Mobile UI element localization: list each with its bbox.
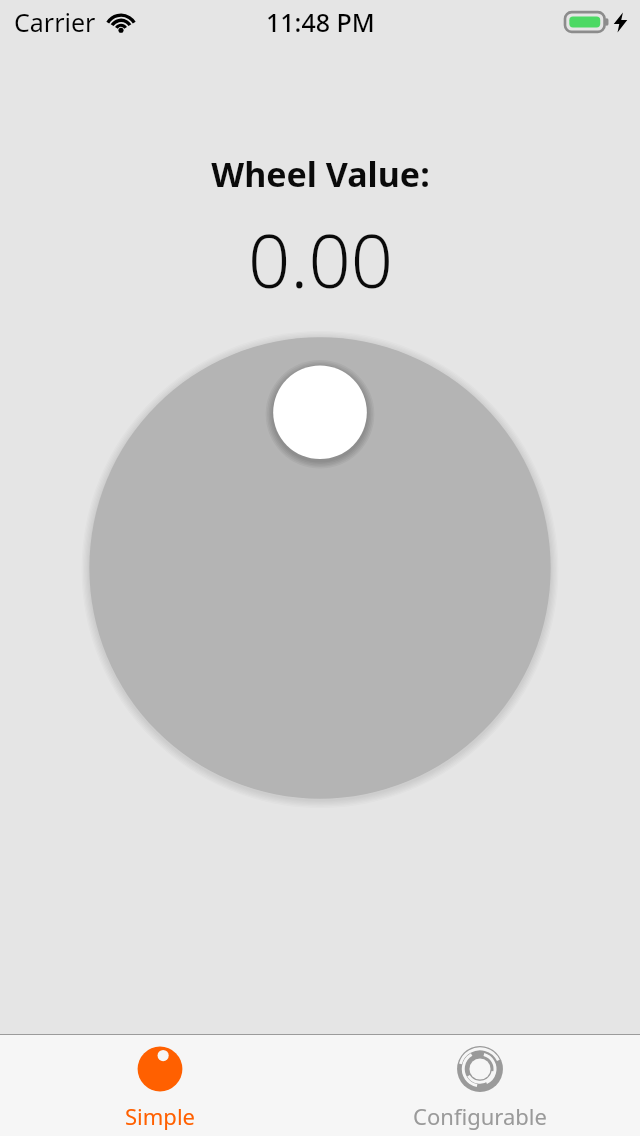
button[interactable]: Configurable <box>320 1041 640 1131</box>
staticText: 0.00 <box>248 209 393 310</box>
staticText: Wheel Value: <box>211 151 430 197</box>
button[interactable]: Simple <box>0 1041 320 1131</box>
staticText: Carrier <box>14 5 96 39</box>
staticText: Configurable <box>413 1101 547 1131</box>
staticText: Simple <box>125 1101 195 1131</box>
button[interactable]: Rotary wheel <box>87 335 553 801</box>
staticText: 11:48 PM <box>266 5 375 39</box>
